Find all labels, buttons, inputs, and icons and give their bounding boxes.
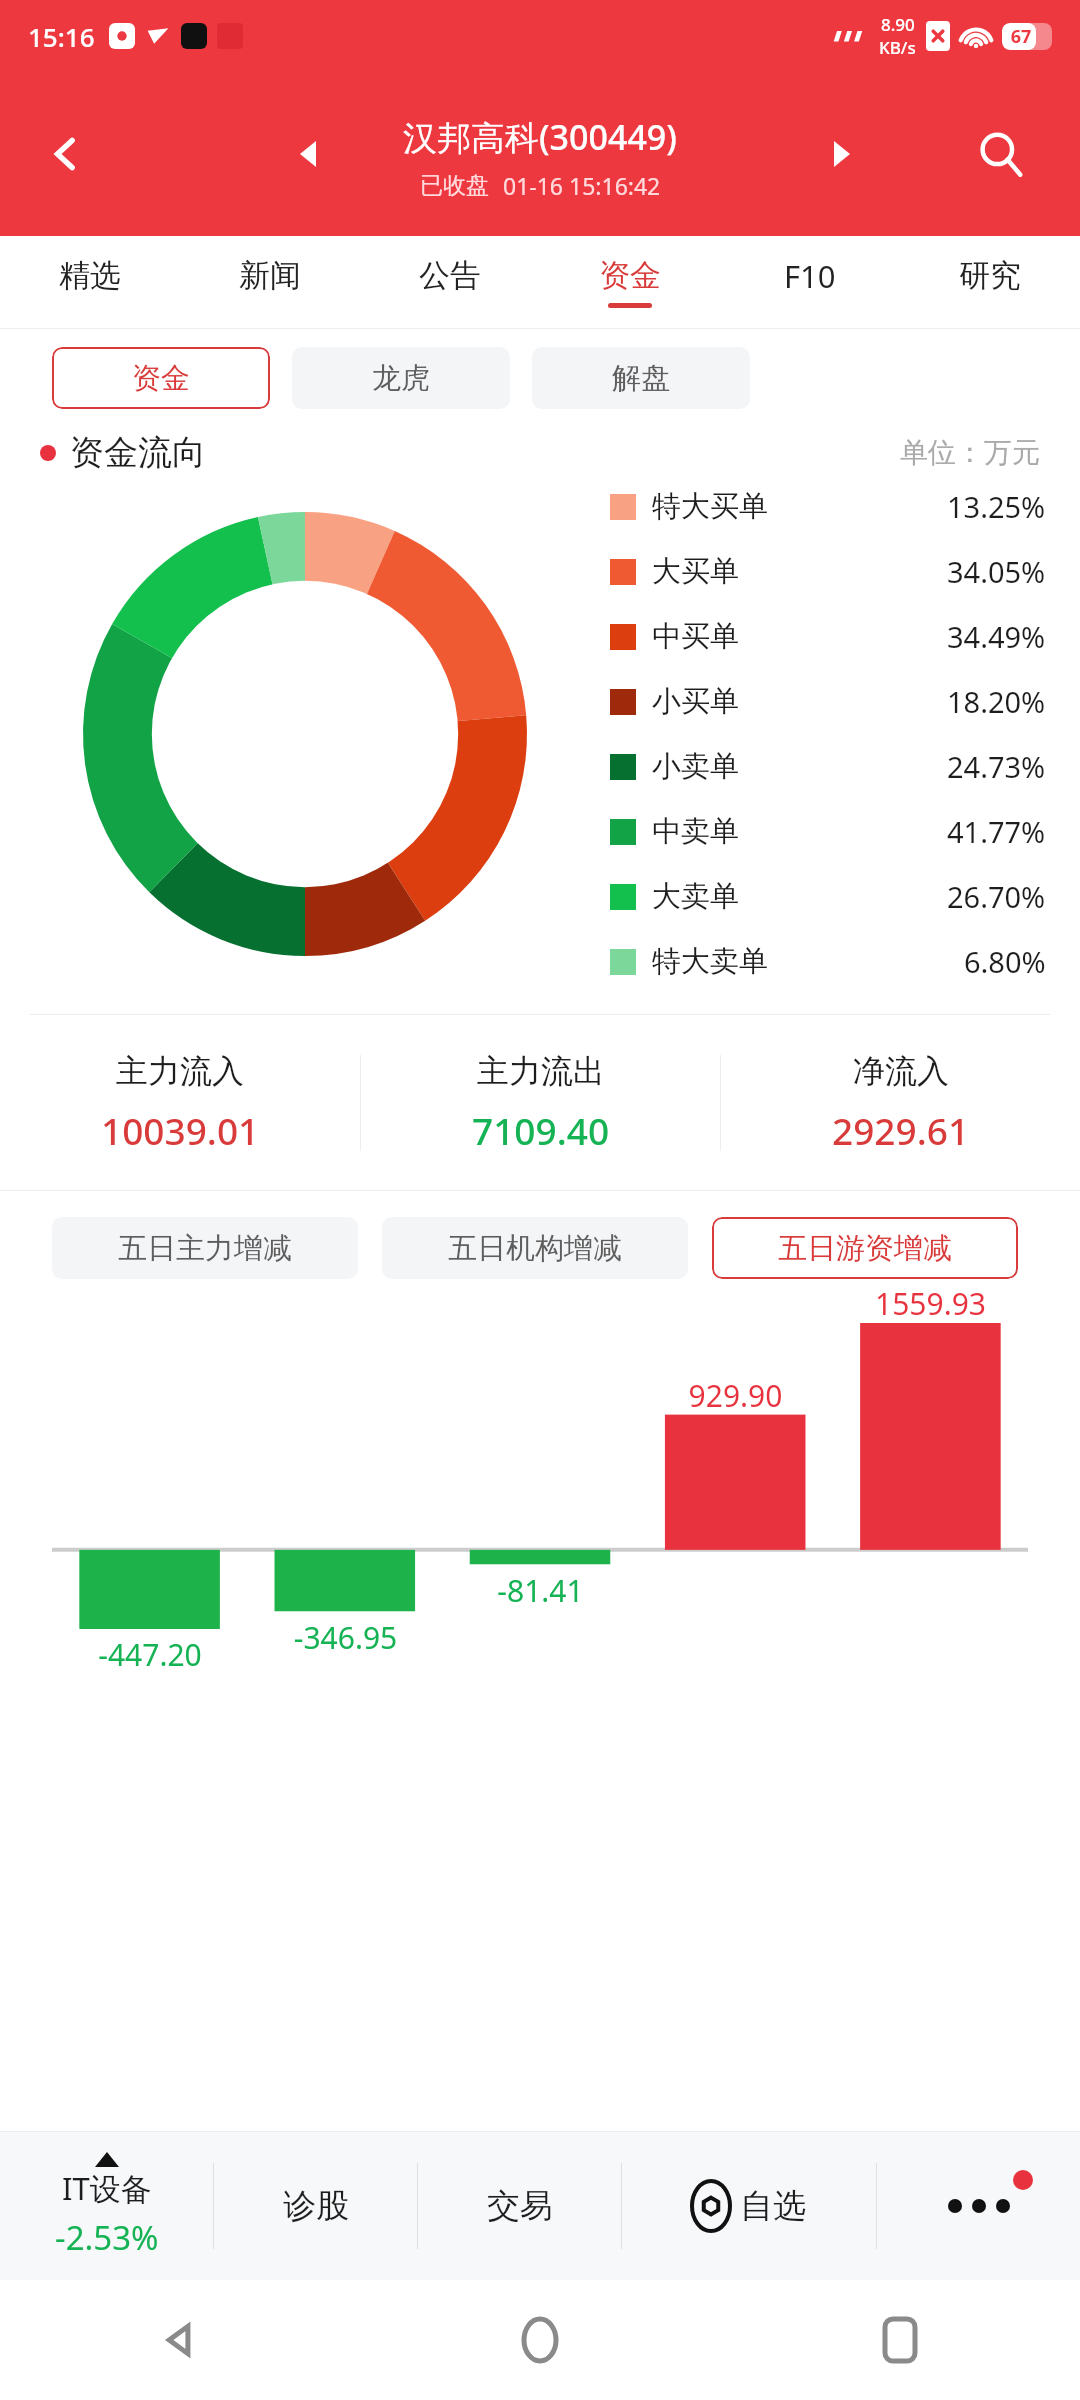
staticText: 研究 — [959, 256, 1021, 295]
staticText: 大卖单 — [652, 878, 739, 915]
button[interactable]: 资金 — [540, 236, 720, 328]
button[interactable]: 公告 — [360, 236, 540, 328]
staticText: 资金流向 — [70, 431, 206, 474]
staticText: 34.05% — [947, 552, 1046, 591]
staticText: 7109.40 — [472, 1105, 610, 1155]
staticText: 单位：万元 — [900, 435, 1040, 470]
button[interactable]: 解盘 — [532, 347, 750, 409]
button[interactable]: 交易 — [418, 2132, 621, 2280]
staticText: 24.73% — [947, 747, 1046, 786]
staticText: 18.20% — [947, 682, 1046, 721]
button[interactable]: 新闻 — [180, 236, 360, 328]
staticText: 净流入 — [853, 1051, 949, 1091]
button[interactable]: 诊股 — [214, 2132, 417, 2280]
staticText: 小买单 — [652, 683, 739, 720]
staticText: 26.70% — [947, 877, 1046, 916]
staticText: -447.20 — [52, 1634, 248, 1675]
staticText: 五日主力增减 — [118, 1230, 292, 1267]
staticText: 15:16 — [28, 19, 95, 54]
staticText: 中卖单 — [652, 813, 739, 850]
staticText: F10 — [784, 255, 836, 297]
staticText: 汉邦高科(300449) — [403, 114, 677, 160]
staticText: 主力流入 — [116, 1051, 244, 1091]
staticText: IT设备 — [62, 2167, 152, 2209]
staticText: 交易 — [487, 2185, 553, 2227]
button[interactable]: F10 — [720, 236, 900, 328]
staticText: 已收盘 — [420, 171, 489, 200]
staticText: 新闻 — [239, 256, 301, 295]
staticText: 小卖单 — [652, 748, 739, 785]
button[interactable]: IT设备 — [0, 2132, 213, 2280]
staticText: 01-16 15:16:42 — [503, 170, 661, 201]
staticText: 解盘 — [612, 360, 670, 397]
button[interactable]: Search — [962, 115, 1040, 193]
staticText: 6.80% — [964, 942, 1046, 981]
staticText: 大买单 — [652, 553, 739, 590]
button[interactable]: 资金 — [52, 347, 270, 409]
staticText: 主力流出 — [477, 1051, 605, 1091]
staticText: KB/s — [879, 36, 916, 59]
staticText: -346.95 — [248, 1617, 443, 1658]
button[interactable]: 五日游资增减 — [712, 1217, 1018, 1279]
staticText: 五日游资增减 — [778, 1230, 952, 1267]
button[interactable]: 精选 — [0, 236, 180, 328]
staticText: 67 — [1002, 24, 1040, 49]
staticText: 特大卖单 — [652, 943, 768, 980]
button[interactable]: 龙虎 — [292, 347, 510, 409]
staticText: 公告 — [419, 256, 481, 295]
staticText: 资金 — [599, 256, 661, 295]
button[interactable]: Back — [30, 118, 102, 190]
staticText: 诊股 — [283, 2185, 349, 2227]
staticText: 特大买单 — [652, 488, 768, 525]
staticText: 资金 — [132, 360, 190, 397]
staticText: 精选 — [59, 256, 121, 295]
staticText: 41.77% — [947, 812, 1046, 851]
button[interactable]: Previous stock — [280, 126, 336, 182]
staticText: 2929.61 — [832, 1105, 970, 1155]
staticText: 中买单 — [652, 618, 739, 655]
staticText: 8.90 — [881, 13, 915, 36]
button[interactable]: 五日机构增减 — [382, 1217, 688, 1279]
staticText: 10039.01 — [101, 1105, 260, 1155]
button[interactable]: 五日主力增减 — [52, 1217, 358, 1279]
staticText: 五日机构增减 — [448, 1230, 622, 1267]
staticText: 929.90 — [638, 1375, 833, 1416]
staticText: -2.53% — [55, 2215, 159, 2260]
staticText: 13.25% — [947, 487, 1046, 526]
staticText: 自选 — [740, 2185, 806, 2227]
staticText: 龙虎 — [372, 360, 430, 397]
button[interactable]: 研究 — [900, 236, 1080, 328]
staticText: -81.41 — [443, 1570, 638, 1611]
staticText: 1559.93 — [833, 1283, 1028, 1324]
button[interactable]: 自选 — [622, 2132, 876, 2280]
button[interactable]: Next stock — [814, 126, 870, 182]
staticText: 34.49% — [947, 617, 1046, 656]
button[interactable]: More — [877, 2132, 1080, 2280]
